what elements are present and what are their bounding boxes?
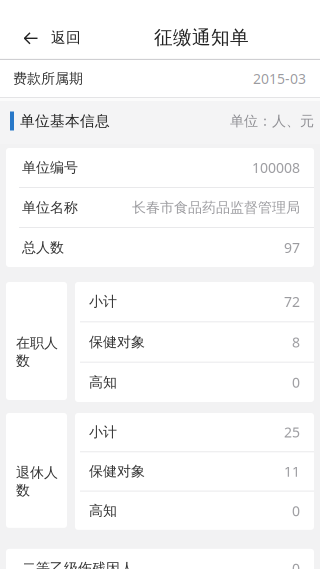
staticText: 二等乙级伤残因人 — [22, 560, 134, 569]
staticText: 长春市食品药品监督管理局 — [132, 199, 300, 216]
button[interactable]: 返回 — [0, 15, 95, 59]
staticText: 97 — [284, 238, 300, 257]
staticText: 小计 — [89, 423, 117, 441]
staticText: 单位基本信息 — [20, 112, 110, 130]
staticText: 100008 — [252, 158, 300, 177]
staticText: 0 — [292, 501, 300, 520]
staticText: 高知 — [89, 373, 117, 391]
staticText: 25 — [284, 423, 300, 442]
staticText: 0 — [292, 373, 300, 392]
staticText: 在职人数 — [16, 334, 58, 370]
staticText: 0 — [292, 559, 300, 569]
staticText: 返回 — [51, 28, 81, 47]
staticText: 8 — [292, 332, 300, 352]
staticText: 11 — [284, 462, 300, 481]
staticText: 保健对象 — [89, 333, 145, 351]
staticText: 总人数 — [22, 239, 64, 256]
staticText: 小计 — [89, 293, 117, 310]
staticText: 退休人数 — [16, 464, 58, 499]
staticText: 2015-03 — [253, 69, 306, 88]
staticText: 保健对象 — [89, 463, 145, 480]
staticText: 单位编号 — [22, 159, 78, 176]
staticText: 征缴通知单 — [154, 26, 249, 49]
staticText: 单位：人、元 — [230, 112, 314, 130]
staticText: 费款所属期 — [13, 70, 83, 87]
staticText: 单位名称 — [22, 199, 78, 216]
staticText: 高知 — [89, 502, 117, 519]
staticText: 72 — [284, 292, 300, 311]
